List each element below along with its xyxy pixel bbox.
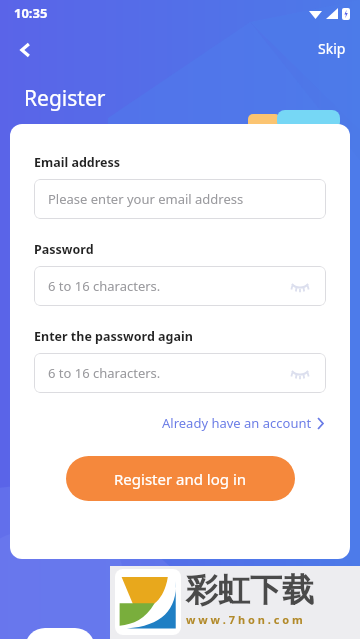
staticText: Password bbox=[34, 241, 94, 258]
staticText: 10:35 bbox=[14, 4, 48, 22]
button[interactable]: Skip bbox=[304, 34, 360, 63]
staticText: Please enter your email address bbox=[48, 190, 244, 208]
button[interactable]: Please enter your email address bbox=[34, 179, 326, 219]
button[interactable]: Show password bbox=[288, 361, 312, 385]
button[interactable]: 6 to 16 characters. bbox=[34, 266, 326, 306]
staticText: Already have an account bbox=[162, 414, 312, 432]
staticText: 彩虹下载 bbox=[186, 570, 314, 610]
button[interactable] bbox=[25, 628, 95, 639]
staticText: Email address bbox=[34, 154, 121, 171]
staticText: Register bbox=[24, 84, 106, 113]
staticText: Register and log in bbox=[114, 469, 247, 489]
button[interactable]: Back bbox=[8, 32, 44, 68]
button[interactable]: Already have an account bbox=[160, 411, 326, 435]
staticText: w w w . 7 h o n . c o m bbox=[186, 612, 303, 627]
staticText: Enter the password again bbox=[34, 328, 193, 345]
staticText: Skip bbox=[318, 39, 346, 58]
staticText: 6 to 16 characters. bbox=[48, 364, 161, 382]
button[interactable]: 6 to 16 characters. bbox=[34, 353, 326, 393]
button[interactable]: Show password bbox=[288, 274, 312, 298]
button[interactable]: Other login methods bbox=[118, 596, 242, 618]
button[interactable]: Register and log in bbox=[66, 456, 295, 501]
staticText: 6 to 16 characters. bbox=[48, 277, 161, 295]
